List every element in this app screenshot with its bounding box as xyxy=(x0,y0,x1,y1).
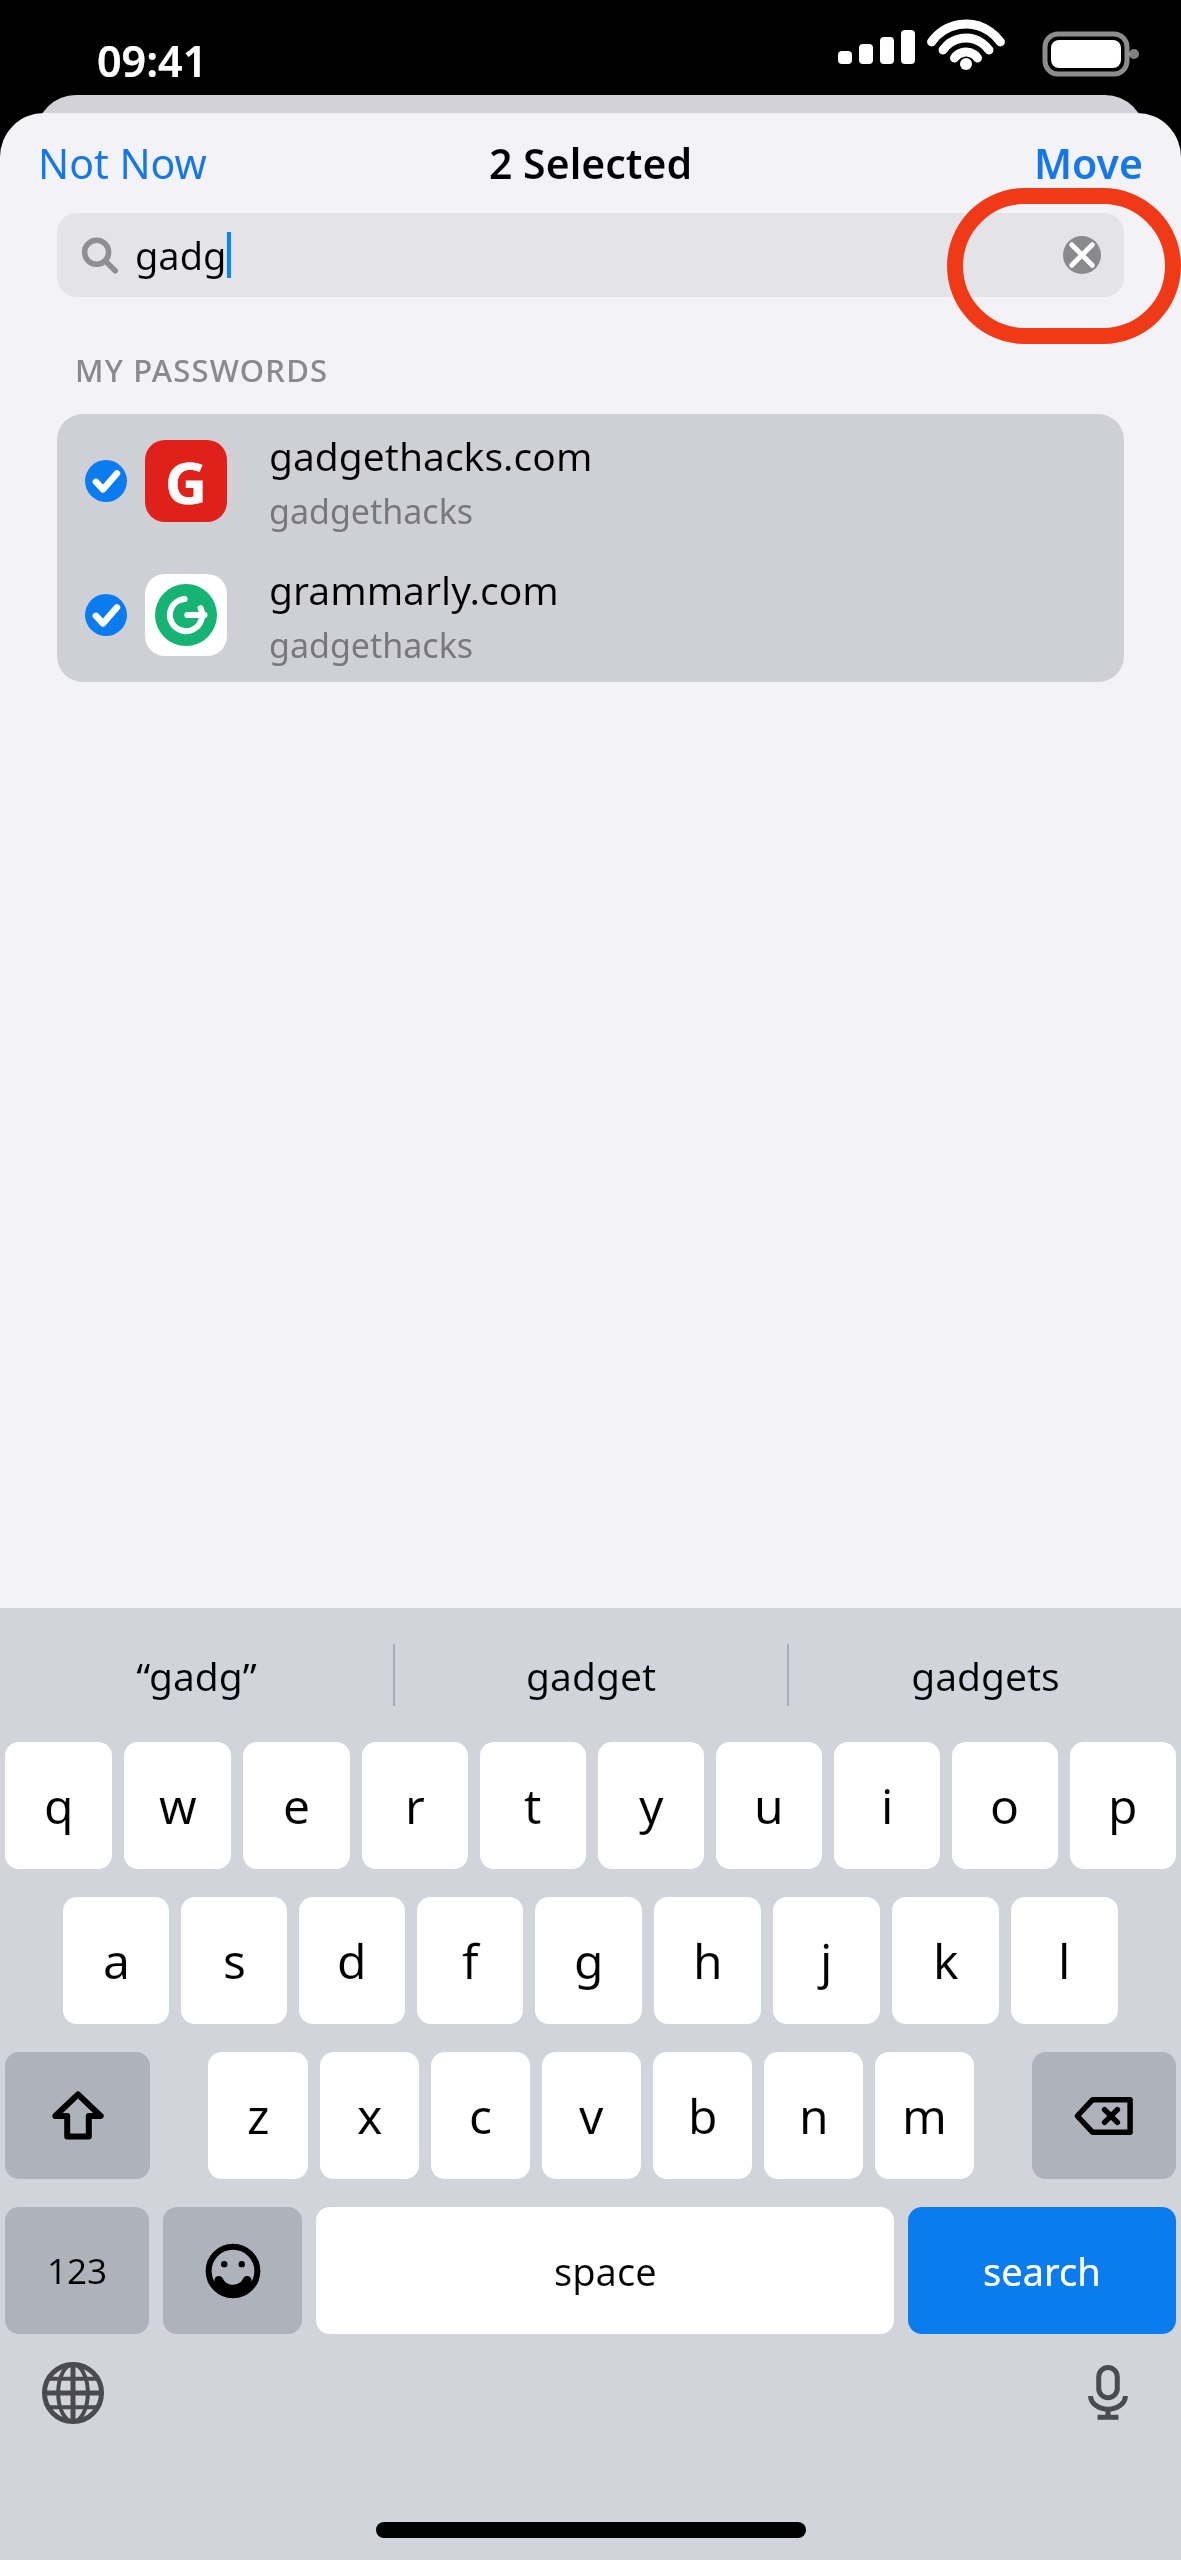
button[interactable]: G xyxy=(57,414,1124,548)
staticText: G xyxy=(165,442,207,521)
staticText: gadget xyxy=(526,1649,656,1702)
button[interactable]: z xyxy=(208,2052,308,2179)
button[interactable]: Not Now xyxy=(20,125,225,201)
staticText: f xyxy=(462,1928,479,1993)
staticText: gadgethacks xyxy=(269,622,474,668)
staticText: space xyxy=(554,2245,657,2297)
button[interactable]: n xyxy=(764,2052,863,2179)
staticText: x xyxy=(357,2083,383,2148)
button[interactable]: y xyxy=(598,1742,704,1869)
button[interactable]: g xyxy=(535,1897,642,2024)
button[interactable]: q xyxy=(5,1742,112,1869)
button[interactable]: d xyxy=(299,1897,405,2024)
staticText: s xyxy=(223,1928,246,1993)
button[interactable]: m xyxy=(875,2052,974,2179)
staticText: a xyxy=(103,1928,130,1993)
staticText: l xyxy=(1058,1928,1071,1993)
staticText: b xyxy=(688,2083,718,2148)
button[interactable]: v xyxy=(542,2052,641,2179)
staticText: “gadg” xyxy=(136,1649,257,1702)
button[interactable]: p xyxy=(1070,1742,1176,1869)
button[interactable]: f xyxy=(417,1897,523,2024)
staticText: z xyxy=(247,2083,270,2148)
staticText: m xyxy=(902,2083,947,2148)
staticText: 2 Selected xyxy=(489,135,693,191)
button[interactable]: gadget xyxy=(395,1608,787,1742)
button[interactable]: 123 xyxy=(5,2207,149,2334)
staticText: gadgethacks xyxy=(269,488,474,534)
staticText: gadg xyxy=(135,229,227,281)
staticText: search xyxy=(983,2245,1101,2297)
staticText: d xyxy=(337,1928,367,1993)
button[interactable]: Clear text xyxy=(1058,231,1106,279)
button[interactable]: w xyxy=(124,1742,231,1869)
button[interactable]: Backspace xyxy=(1032,2052,1176,2179)
staticText: n xyxy=(799,2083,829,2148)
button[interactable]: Change keyboard language xyxy=(38,2358,108,2428)
button[interactable]: search xyxy=(908,2207,1176,2334)
button[interactable]: r xyxy=(362,1742,468,1869)
button[interactable]: “gadg” xyxy=(0,1608,393,1742)
staticText: p xyxy=(1108,1773,1138,1838)
button[interactable]: gadgets xyxy=(789,1608,1181,1742)
button[interactable]: Dictate xyxy=(1073,2358,1143,2428)
staticText: gadgets xyxy=(911,1649,1060,1702)
staticText: Not Now xyxy=(38,135,207,191)
staticText: h xyxy=(693,1928,723,1993)
staticText: w xyxy=(159,1773,197,1838)
button[interactable]: gadg xyxy=(57,213,1124,297)
staticText: j xyxy=(820,1928,833,1993)
button[interactable]: x xyxy=(320,2052,419,2179)
button[interactable]: space xyxy=(316,2207,894,2334)
button[interactable]: s xyxy=(181,1897,287,2024)
staticText: k xyxy=(933,1928,959,1993)
button[interactable]: j xyxy=(773,1897,880,2024)
staticText: 123 xyxy=(47,2247,108,2295)
staticText: MY PASSWORDS xyxy=(75,349,329,391)
button[interactable]: b xyxy=(653,2052,752,2179)
staticText: i xyxy=(881,1773,894,1838)
button[interactable]: l xyxy=(1011,1897,1118,2024)
staticText: y xyxy=(639,1773,664,1838)
staticText: grammarly.com xyxy=(269,563,559,616)
button[interactable]: k xyxy=(892,1897,999,2024)
staticText: t xyxy=(524,1773,542,1838)
button[interactable]: Emoji xyxy=(163,2207,302,2334)
staticText: Move xyxy=(1034,135,1143,191)
staticText: 09:41 xyxy=(97,31,208,90)
button[interactable]: i xyxy=(834,1742,940,1869)
button[interactable]: h xyxy=(654,1897,761,2024)
staticText: gadgethacks.com xyxy=(269,429,593,482)
button[interactable]: e xyxy=(243,1742,350,1869)
button[interactable]: u xyxy=(716,1742,822,1869)
staticText: g xyxy=(574,1928,604,1993)
staticText: r xyxy=(405,1773,425,1838)
staticText: u xyxy=(754,1773,784,1838)
staticText: e xyxy=(283,1773,311,1838)
button[interactable]: c xyxy=(431,2052,530,2179)
staticText: c xyxy=(469,2083,493,2148)
staticText: q xyxy=(44,1773,74,1838)
button[interactable]: t xyxy=(480,1742,586,1869)
button[interactable]: o xyxy=(952,1742,1058,1869)
button[interactable]: Shift xyxy=(5,2052,150,2179)
button[interactable]: a xyxy=(63,1897,169,2024)
staticText: v xyxy=(579,2083,604,2148)
button[interactable]: grammarly.com xyxy=(57,548,1124,682)
button[interactable]: Move xyxy=(1016,125,1161,201)
staticText: o xyxy=(990,1773,1020,1838)
